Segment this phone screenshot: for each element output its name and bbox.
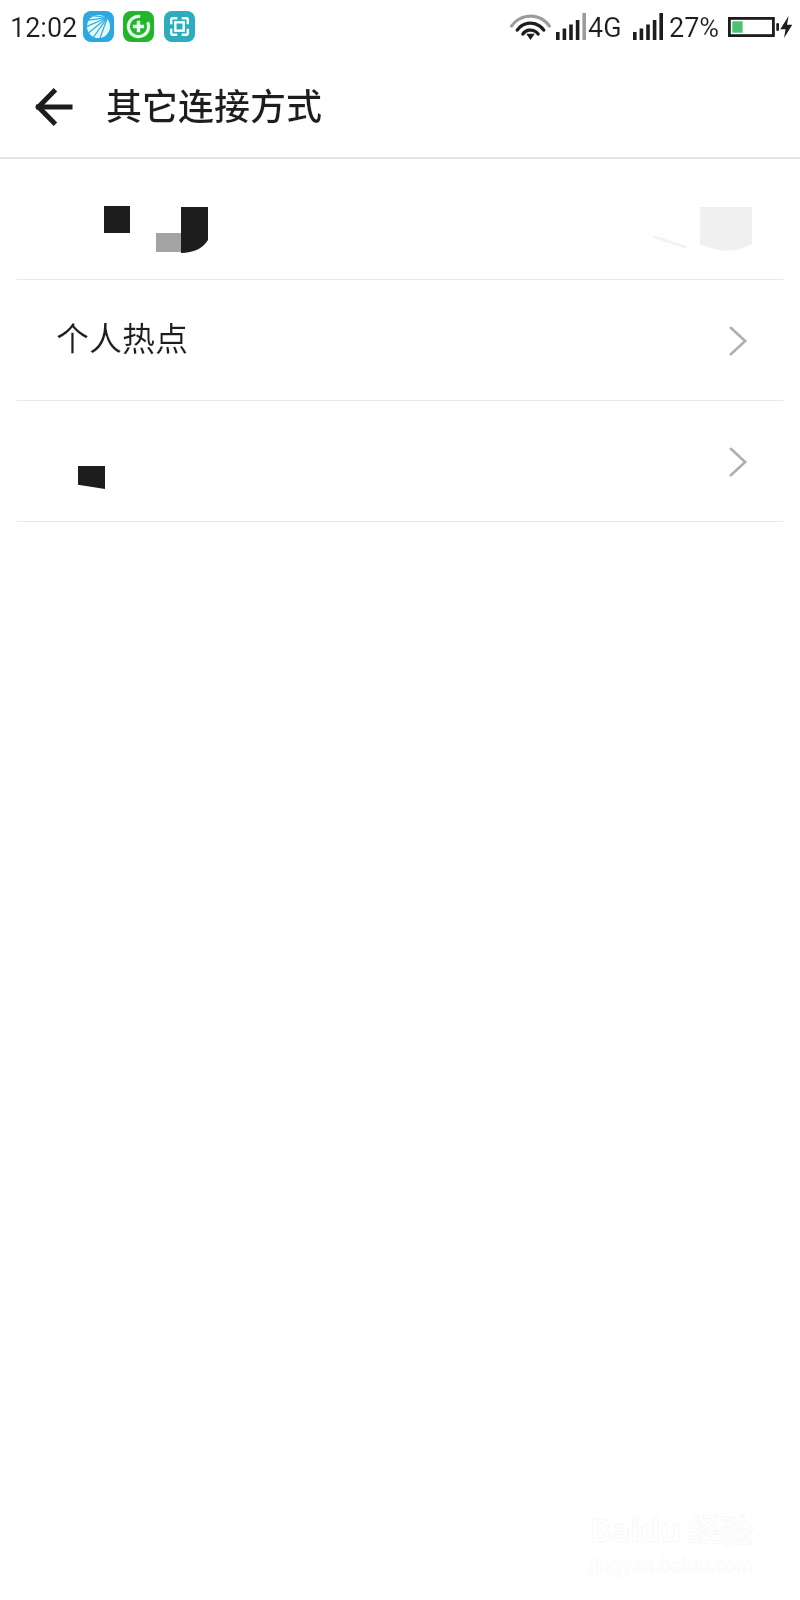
button[interactable]: 个人热点: [0, 280, 800, 400]
staticText: 12:02: [10, 12, 78, 44]
button[interactable]: Setting: [0, 159, 800, 279]
button[interactable]: Back: [0, 53, 104, 157]
button[interactable]: Setting: [0, 401, 800, 521]
staticText: 4G: [588, 12, 622, 44]
staticText: 其它连接方式: [106, 78, 323, 130]
staticText: 27%: [669, 12, 720, 44]
staticText: 个人热点: [56, 313, 188, 361]
